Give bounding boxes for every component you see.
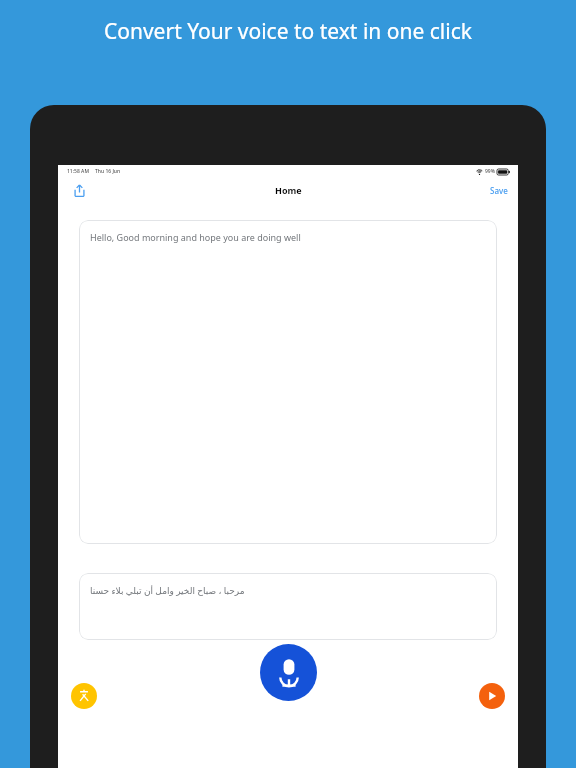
staticText: 99%	[485, 168, 495, 175]
staticText: Hello, Good morning and hope you are doi…	[90, 231, 301, 243]
staticText: Thu 16 Jun	[95, 168, 121, 175]
staticText: مرحبا ، صباح الخير وامل أن تبلي بلاء حسن…	[90, 584, 245, 596]
staticText: Save	[490, 185, 508, 196]
button[interactable]: Save	[490, 185, 508, 196]
button[interactable]: Hello, Good morning and hope you are doi…	[79, 220, 497, 544]
staticText: Convert Your voice to text in one click	[104, 17, 472, 46]
button[interactable]: Translate	[71, 683, 97, 709]
staticText: 11:58 AM	[67, 168, 89, 175]
button[interactable]: مرحبا ، صباح الخير وامل أن تبلي بلاء حسن…	[79, 573, 497, 640]
button[interactable]: Share	[68, 179, 90, 201]
staticText: Home	[275, 184, 302, 196]
button[interactable]: Record	[260, 644, 317, 701]
button[interactable]: Play	[479, 683, 505, 709]
